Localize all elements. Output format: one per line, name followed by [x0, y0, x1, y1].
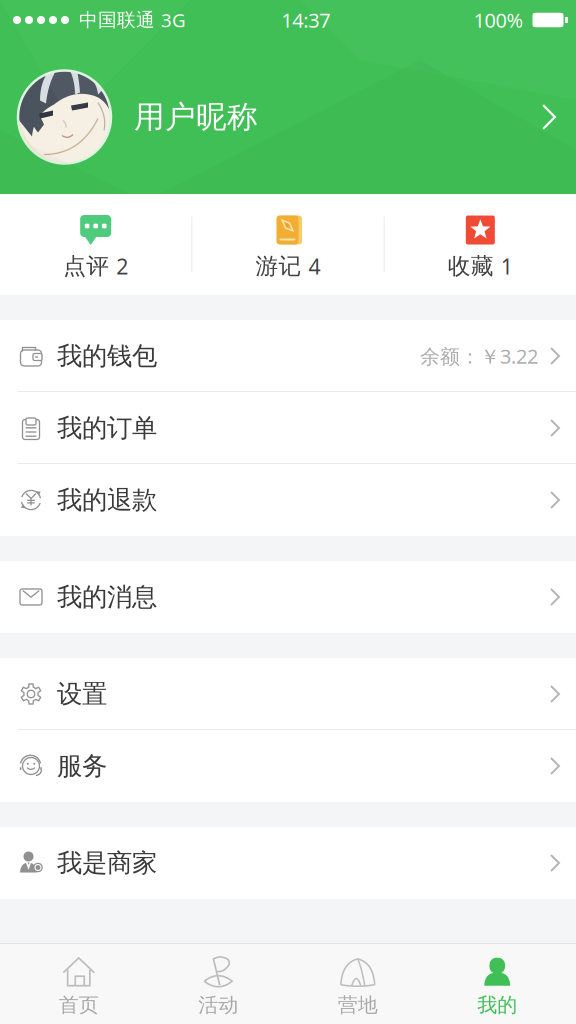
- button[interactable]: 我的钱包: [0, 320, 576, 392]
- button[interactable]: 我的: [427, 943, 567, 1024]
- button[interactable]: 活动: [148, 943, 288, 1024]
- staticText: 首页: [59, 993, 99, 1017]
- staticText: 我的钱包: [57, 340, 157, 371]
- staticText: 我的: [477, 993, 517, 1017]
- button[interactable]: 营地: [288, 943, 427, 1024]
- staticText: 收藏: [448, 252, 494, 280]
- button[interactable]: 服务: [0, 730, 576, 802]
- button[interactable]: 收藏: [385, 194, 576, 295]
- button[interactable]: 首页: [9, 943, 148, 1024]
- staticText: 用户昵称: [134, 98, 258, 136]
- button[interactable]: 我的退款: [0, 464, 576, 536]
- staticText: 1: [501, 252, 513, 280]
- button[interactable]: 用户昵称: [0, 40, 576, 194]
- button[interactable]: 设置: [0, 658, 576, 730]
- button[interactable]: 我是商家: [0, 827, 576, 899]
- staticText: 营地: [338, 993, 378, 1017]
- staticText: 活动: [198, 993, 238, 1017]
- staticText: 4: [308, 252, 320, 280]
- button[interactable]: 点评: [0, 194, 191, 295]
- staticText: 设置: [57, 678, 107, 709]
- staticText: 14:37: [281, 7, 330, 33]
- button[interactable]: 我的消息: [0, 561, 576, 633]
- staticText: 游记: [255, 252, 301, 280]
- button[interactable]: 游记: [192, 194, 384, 295]
- staticText: 我的退款: [57, 484, 157, 515]
- button[interactable]: 我的订单: [0, 392, 576, 464]
- staticText: 余额：￥3.22: [420, 343, 538, 369]
- staticText: 我的订单: [57, 412, 157, 443]
- staticText: 我的消息: [57, 581, 157, 612]
- staticText: 点评: [63, 252, 109, 280]
- staticText: 100%: [473, 7, 523, 33]
- staticText: 3G: [161, 8, 186, 32]
- staticText: 中国联通: [79, 8, 155, 31]
- staticText: 我是商家: [57, 847, 157, 878]
- staticText: 服务: [57, 750, 107, 781]
- staticText: 2: [116, 252, 128, 280]
